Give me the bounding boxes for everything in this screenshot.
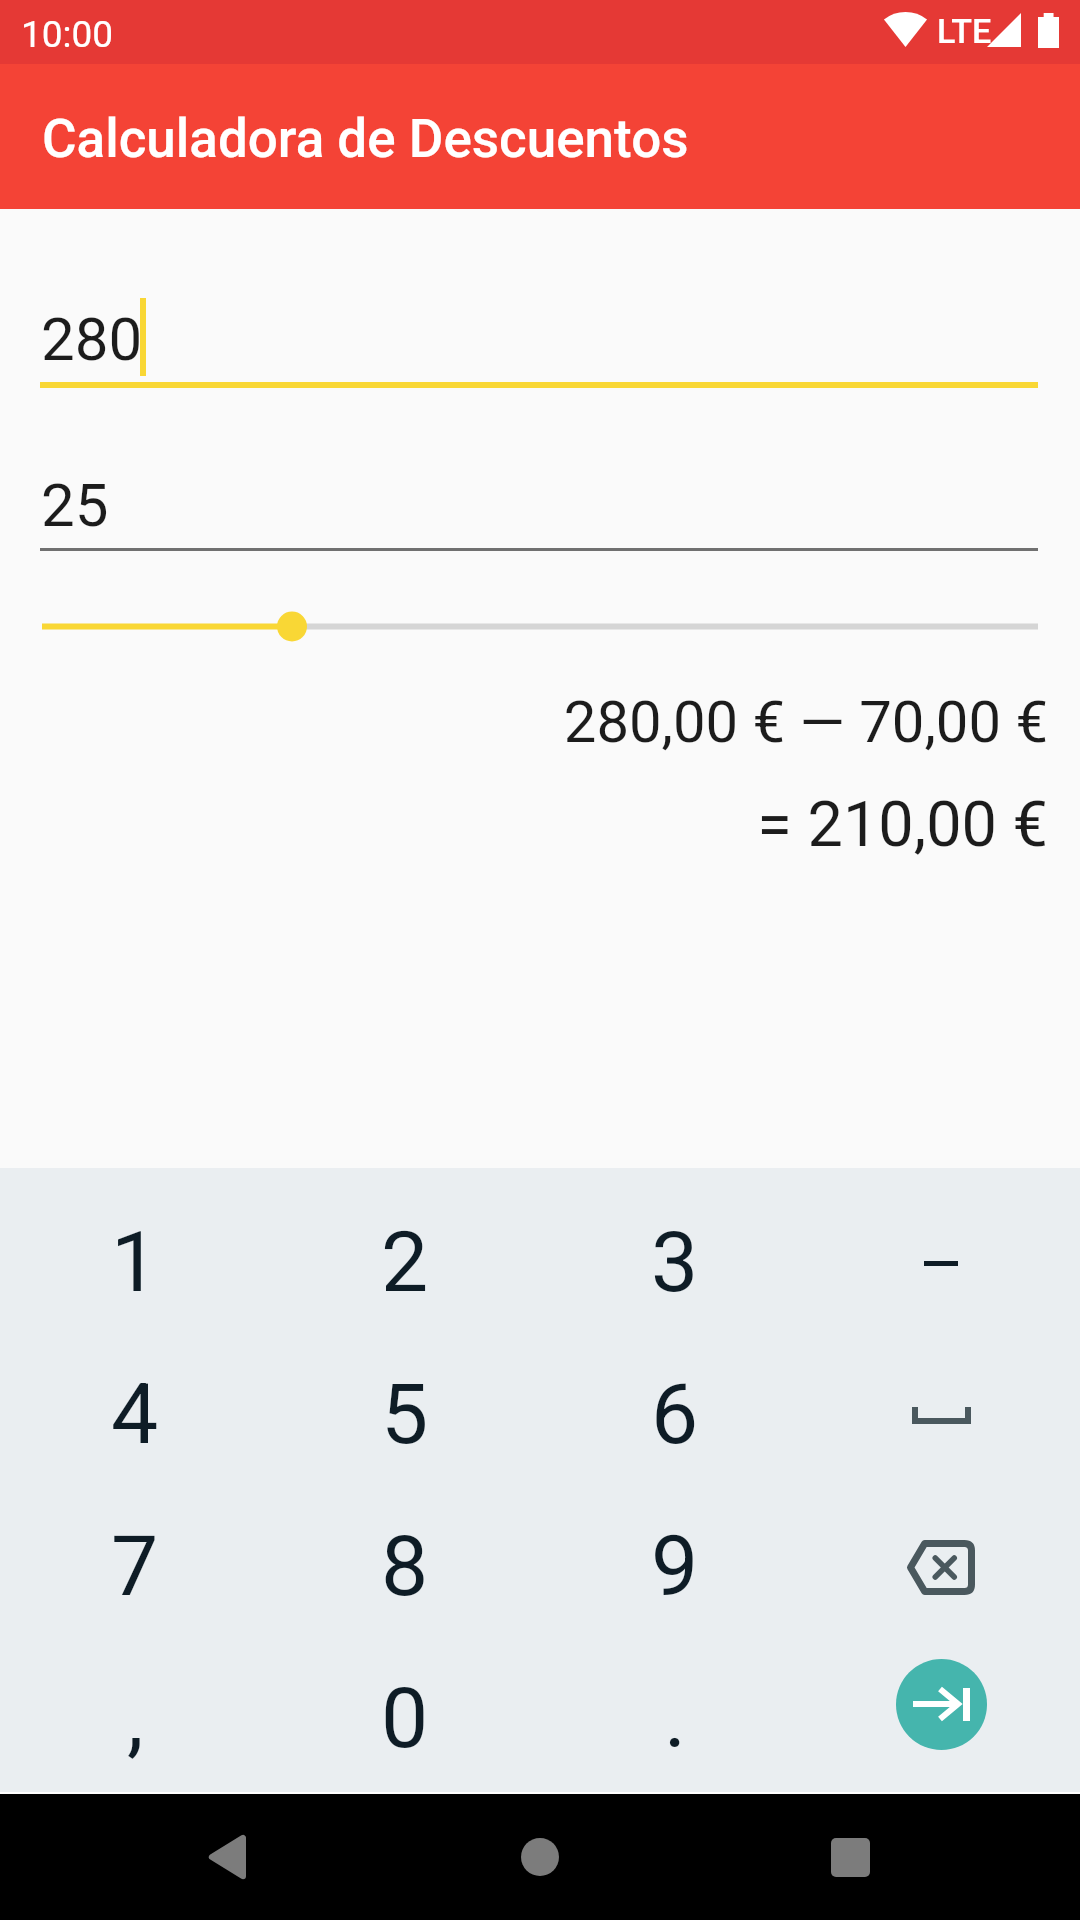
staticText: 7 [111, 1517, 159, 1615]
staticText: . [664, 1669, 687, 1767]
staticText: 0 [381, 1669, 429, 1767]
staticText: = 210,00 € [0, 788, 1048, 862]
button[interactable]: Space [810, 1320, 1080, 1472]
staticText: 10:00 [21, 13, 114, 56]
button[interactable]: Recents [720, 1794, 1080, 1920]
staticText: 6 [651, 1365, 699, 1463]
staticText: 8 [381, 1517, 429, 1615]
button[interactable]: Discount slider [0, 600, 1080, 654]
button[interactable]: Minus [810, 1168, 1080, 1320]
button[interactable]: , [0, 1624, 270, 1776]
button[interactable]: . [540, 1624, 810, 1776]
other: Battery [1038, 13, 1059, 48]
staticText: 1 [111, 1213, 159, 1311]
staticText: 25 [41, 470, 109, 540]
staticText: 2 [381, 1213, 429, 1311]
button[interactable]: Delete [810, 1472, 1080, 1624]
staticText: , [127, 1669, 144, 1767]
button[interactable]: 0 [270, 1624, 540, 1776]
button[interactable]: 280 [0, 298, 1080, 398]
other: Space [912, 1407, 971, 1424]
other: Wifi [884, 12, 927, 47]
button[interactable]: 25 [0, 463, 1080, 563]
button[interactable]: 2 [270, 1168, 540, 1320]
button[interactable]: 7 [0, 1472, 270, 1624]
staticText: 3 [651, 1213, 699, 1311]
button[interactable]: 4 [0, 1320, 270, 1472]
staticText: LTE [937, 11, 992, 51]
button[interactable]: 6 [540, 1320, 810, 1472]
button[interactable]: Enter [810, 1624, 1080, 1776]
button[interactable]: 3 [540, 1168, 810, 1320]
staticText: Calculadora de Descuentos [42, 108, 689, 170]
staticText: 280,00 € — 70,00 € [0, 688, 1048, 756]
button[interactable]: 5 [270, 1320, 540, 1472]
button[interactable]: 9 [540, 1472, 810, 1624]
staticText: 5 [381, 1365, 429, 1463]
staticText: 4 [111, 1365, 159, 1463]
button[interactable]: 8 [270, 1472, 540, 1624]
button[interactable]: Home [360, 1794, 720, 1920]
button[interactable]: Enter [896, 1659, 987, 1750]
other: Delete [907, 1540, 975, 1595]
button[interactable]: Back [0, 1794, 360, 1920]
staticText: 9 [651, 1517, 699, 1615]
button[interactable]: 1 [0, 1168, 270, 1320]
staticText: 280 [41, 304, 143, 374]
